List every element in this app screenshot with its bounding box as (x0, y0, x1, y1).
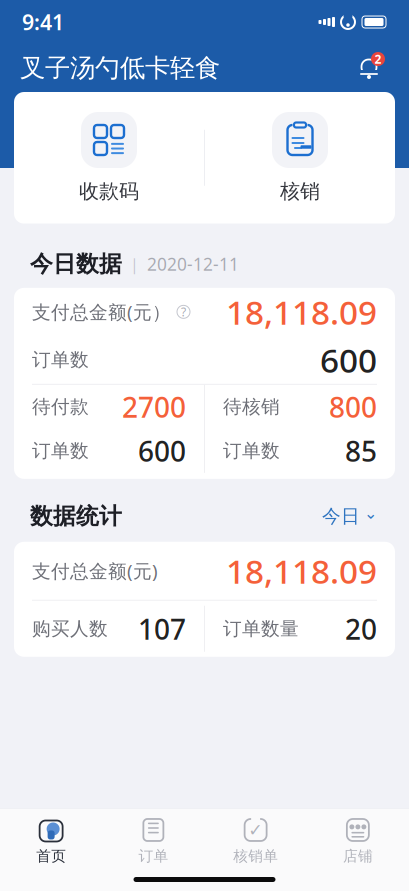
staticText: 店铺 (343, 847, 373, 865)
staticText: 800 (329, 388, 377, 425)
staticText: 收款码 (79, 179, 139, 204)
button[interactable]: 收款码 (14, 106, 204, 210)
staticText: 支付总金额(元） (32, 299, 171, 324)
staticText: 叉子汤勺低卡轻食 (20, 52, 220, 83)
button[interactable]: ✓ (204, 809, 307, 869)
staticText: 核销 (280, 179, 320, 204)
staticText: 支付总金额(元) (32, 558, 158, 583)
staticText: 数据统计 (30, 502, 122, 530)
staticText: 订单数 (32, 439, 89, 462)
staticText: ⌄ (364, 504, 377, 522)
button[interactable]: 核销 (205, 106, 395, 210)
staticText: 600 (320, 338, 377, 382)
button[interactable]: Notifications (349, 48, 389, 88)
staticText: 首页 (36, 847, 66, 865)
staticText: 85 (345, 432, 377, 469)
staticText: 18,118.09 (226, 290, 377, 334)
staticText: 107 (138, 610, 186, 647)
staticText: 订单 (138, 847, 168, 865)
staticText: 9:41 (22, 8, 64, 36)
staticText: 订单数 (223, 439, 280, 462)
staticText: 待核销 (223, 395, 280, 418)
staticText: 核销单 (233, 847, 278, 865)
staticText: 2 (374, 51, 381, 67)
button[interactable]: 店铺 (307, 809, 409, 869)
staticText: 今日 (322, 505, 360, 528)
staticText: 600 (138, 432, 186, 469)
staticText: 18,118.09 (226, 549, 377, 593)
staticText: 待付款 (32, 395, 89, 418)
staticText: 2020-12-11 (147, 252, 239, 275)
button[interactable]: 首页 (0, 809, 102, 869)
button[interactable]: 订单 (102, 809, 204, 869)
staticText: 购买人数 (32, 617, 108, 640)
button[interactable]: 今日 (320, 501, 379, 532)
staticText: 订单数量 (223, 617, 299, 640)
staticText: 今日数据 (30, 250, 122, 278)
staticText: | (130, 253, 139, 274)
staticText: ? (181, 304, 186, 320)
staticText: 20 (345, 610, 377, 647)
staticText: 2700 (122, 388, 186, 425)
staticText: 订单数 (32, 348, 89, 371)
staticText: ✓ (248, 820, 263, 840)
